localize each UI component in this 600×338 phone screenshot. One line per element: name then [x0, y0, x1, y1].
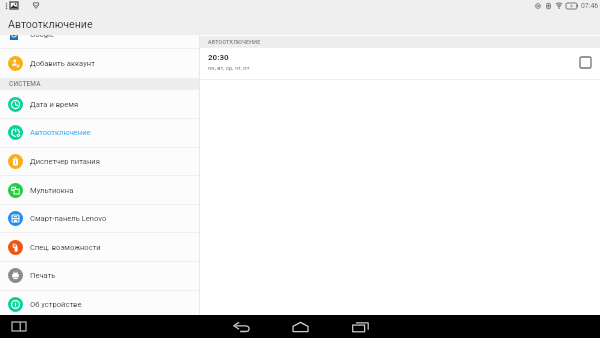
button[interactable]: Google [0, 35, 199, 48]
staticText: Смарт-панель Lenovo [30, 214, 107, 223]
staticText: Добавить аккаунт [30, 59, 95, 68]
button[interactable]: Смарт-панель Lenovo [0, 205, 199, 231]
button[interactable]: Автоотключение [0, 119, 199, 145]
button[interactable]: Split screen [6, 315, 32, 338]
staticText: Дата и время [30, 100, 79, 109]
staticText: 20:30 [208, 53, 229, 62]
staticText: Диспетчер питания [30, 157, 100, 166]
staticText: Google [30, 35, 54, 39]
button[interactable]: Печать [0, 262, 199, 288]
staticText: пн, вт, ср, чт, пт [208, 65, 250, 72]
button[interactable]: Добавить аккаунт [0, 50, 199, 76]
button[interactable]: Об устройстве [0, 291, 199, 315]
staticText: СИСТЕМА [9, 80, 41, 88]
button[interactable]: 20:30 [200, 48, 600, 79]
button[interactable]: Home [279, 315, 321, 338]
button[interactable]: Дата и время [0, 91, 199, 117]
button[interactable]: Мультиокна [0, 177, 199, 203]
staticText: АВТООТКЛЮЧЕНИЕ [208, 39, 261, 45]
staticText: Автоотключение [30, 128, 91, 137]
staticText: Об устройстве [30, 300, 82, 309]
button[interactable]: Back [220, 315, 262, 338]
staticText: Спец. возможности [30, 243, 101, 252]
staticText: Мультиокна [30, 186, 74, 195]
button[interactable]: Recents [340, 315, 382, 338]
button[interactable]: Спец. возможности [0, 234, 199, 260]
button[interactable]: Диспетчер питания [0, 148, 199, 174]
staticText: Печать [30, 271, 56, 280]
staticText: 07:46 [581, 2, 599, 10]
staticText: Автоотключение [8, 18, 93, 30]
